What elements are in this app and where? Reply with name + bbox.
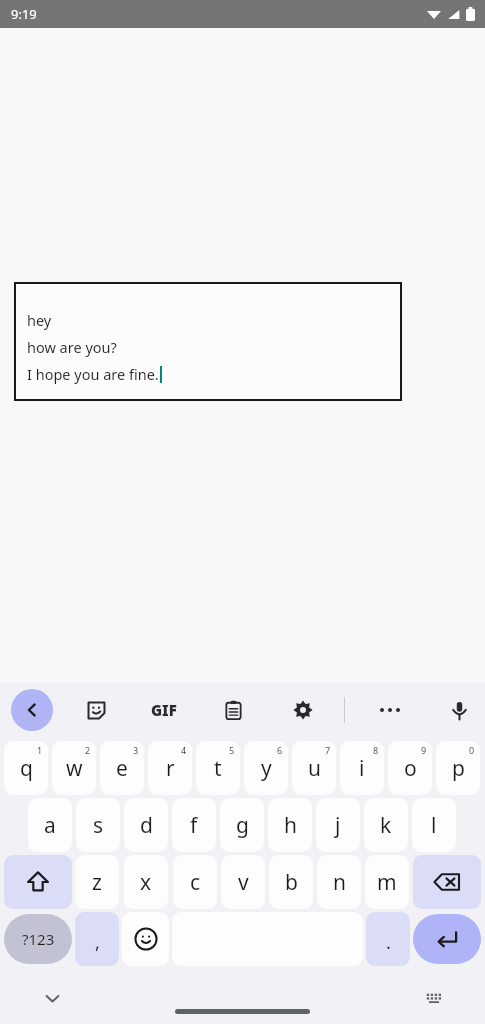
staticText: d	[140, 811, 153, 840]
staticText: o	[404, 754, 417, 783]
staticText: i	[359, 754, 365, 783]
staticText: r	[166, 754, 175, 783]
staticText: 0	[469, 744, 475, 756]
button[interactable]: c	[173, 855, 217, 909]
staticText: 4	[181, 744, 187, 756]
staticText: 1	[37, 744, 43, 756]
button[interactable]: o	[388, 741, 432, 795]
staticText: 9	[421, 744, 427, 756]
button[interactable]: Stickers	[78, 692, 114, 728]
staticText: 8	[373, 744, 379, 756]
button[interactable]: m	[365, 855, 409, 909]
staticText: 3	[133, 744, 139, 756]
staticText: 9:19	[11, 5, 37, 23]
button[interactable]: Enter	[413, 914, 481, 964]
staticText: m	[377, 868, 397, 897]
staticText: v	[238, 868, 249, 897]
button[interactable]: n	[317, 855, 361, 909]
staticText: e	[116, 754, 128, 783]
button[interactable]: Settings	[285, 692, 321, 728]
staticText: x	[140, 868, 152, 897]
button[interactable]: w	[52, 741, 96, 795]
staticText: 2	[85, 744, 91, 756]
button[interactable]: Backspace	[413, 855, 481, 909]
button[interactable]: a	[28, 798, 72, 852]
staticText: t	[214, 754, 222, 783]
staticText: u	[308, 754, 321, 783]
button[interactable]: b	[269, 855, 313, 909]
staticText: 5	[229, 744, 235, 756]
staticText: how are you?	[27, 337, 117, 357]
button[interactable]: hey	[14, 282, 402, 401]
button[interactable]: e	[100, 741, 144, 795]
button[interactable]: r	[148, 741, 192, 795]
button[interactable]: ,	[75, 912, 119, 966]
button[interactable]: Clipboard	[215, 692, 251, 728]
staticText: l	[431, 811, 437, 840]
button[interactable]: f	[172, 798, 216, 852]
button[interactable]: s	[76, 798, 120, 852]
staticText: 6	[277, 744, 283, 756]
button[interactable]: Change keyboard	[419, 983, 449, 1013]
button[interactable]: Back	[11, 689, 53, 731]
staticText: 7	[325, 744, 331, 756]
button[interactable]: Hide keyboard	[34, 980, 70, 1016]
button[interactable]: Emoji	[122, 912, 169, 966]
staticText: p	[452, 754, 465, 783]
staticText: y	[261, 754, 272, 783]
button[interactable]: u	[292, 741, 336, 795]
button[interactable]: x	[124, 855, 168, 909]
button[interactable]: Voice input	[441, 692, 477, 728]
staticText: a	[44, 811, 56, 840]
button[interactable]: t	[196, 741, 240, 795]
staticText: ,	[95, 930, 100, 955]
staticText: h	[284, 811, 297, 840]
staticText: I hope you are fine.	[27, 364, 159, 384]
button[interactable]: GIF	[142, 688, 186, 732]
button[interactable]: g	[220, 798, 264, 852]
button[interactable]: Shift	[4, 855, 72, 909]
button[interactable]: v	[221, 855, 265, 909]
button[interactable]: k	[364, 798, 408, 852]
button[interactable]: z	[75, 855, 119, 909]
button[interactable]: l	[412, 798, 456, 852]
staticText: g	[236, 811, 249, 840]
button[interactable]: i	[340, 741, 384, 795]
button[interactable]: .	[366, 912, 410, 966]
staticText: z	[92, 868, 102, 897]
staticText: b	[285, 868, 298, 897]
button[interactable]: h	[268, 798, 312, 852]
staticText: GIF	[151, 700, 177, 720]
staticText: j	[335, 811, 341, 840]
staticText: ?123	[22, 929, 55, 949]
staticText: hey	[27, 310, 52, 330]
button[interactable]: y	[244, 741, 288, 795]
button[interactable]: p	[436, 741, 480, 795]
button[interactable]: ?123	[4, 914, 72, 964]
staticText: s	[93, 811, 104, 840]
button[interactable]: More options	[372, 692, 408, 728]
staticText: q	[20, 754, 33, 783]
button[interactable]: j	[316, 798, 360, 852]
button[interactable]: q	[4, 741, 48, 795]
staticText: n	[333, 868, 346, 897]
staticText: w	[66, 754, 83, 783]
button[interactable]: d	[124, 798, 168, 852]
staticText: k	[380, 811, 392, 840]
staticText: c	[190, 868, 201, 897]
staticText: f	[190, 811, 198, 840]
staticText: .	[386, 930, 391, 955]
